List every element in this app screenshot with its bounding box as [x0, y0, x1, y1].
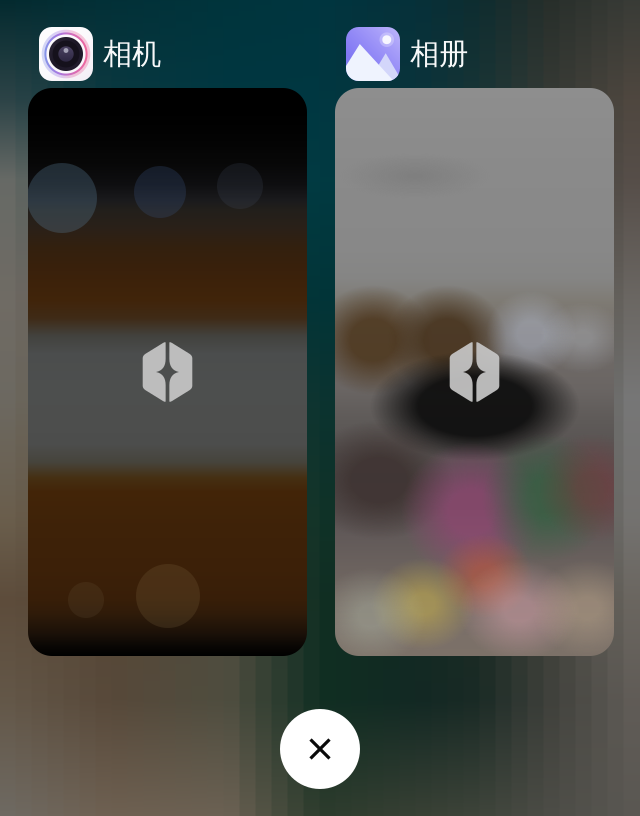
- staticText: 相机: [103, 36, 161, 72]
- button[interactable]: 关闭: [280, 709, 360, 789]
- staticText: 相册: [410, 36, 468, 72]
- button[interactable]: 相机: [28, 27, 307, 656]
- button[interactable]: 相册: [335, 27, 614, 656]
